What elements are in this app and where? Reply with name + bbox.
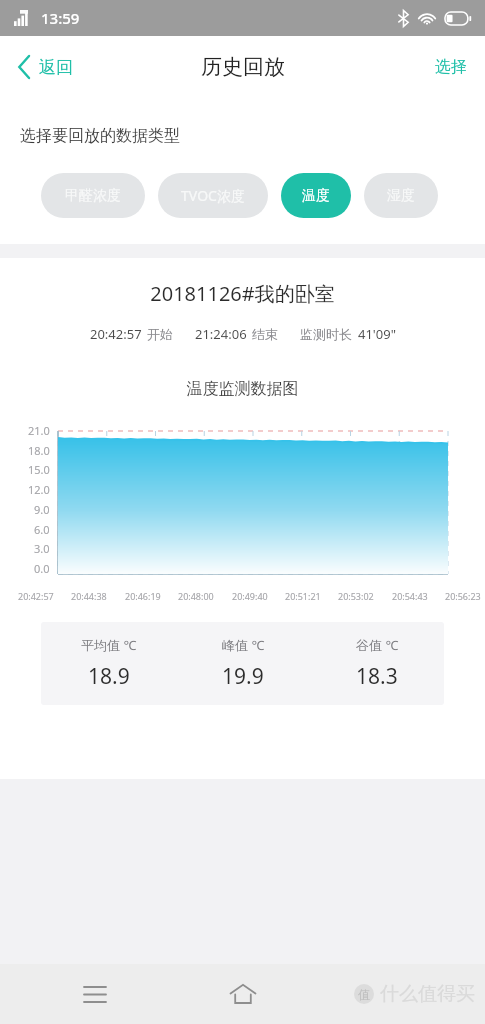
staticText: 18.0 (28, 443, 50, 458)
staticText: 平均值 ℃ (81, 636, 137, 654)
staticText: 12.0 (28, 482, 50, 497)
staticText: 20:44:38 (71, 590, 107, 602)
staticText: 21.0 (28, 423, 50, 438)
staticText: 甲醛浓度 (65, 187, 121, 205)
staticText: 20:54:43 (392, 590, 428, 602)
staticText: 返回 (39, 57, 73, 78)
staticText: 湿度 (387, 187, 415, 205)
staticText: 值 (358, 987, 370, 1002)
button[interactable]: Recent apps (78, 977, 112, 1011)
button[interactable]: 选择 (417, 45, 485, 89)
staticText: 0.0 (34, 561, 50, 576)
staticText: 3.0 (34, 541, 50, 556)
staticText: 21:24:06 (195, 325, 247, 343)
staticText: 9.0 (34, 502, 50, 517)
staticText: 结束 (252, 326, 278, 342)
staticText: 13:59 (41, 8, 80, 28)
staticText: 20:42:57 (18, 590, 54, 602)
staticText: 什么值得买 (380, 982, 475, 1006)
button[interactable]: 甲醛浓度 (41, 173, 145, 218)
staticText: 20:48:00 (178, 590, 214, 602)
button[interactable]: 湿度 (364, 173, 438, 218)
staticText: 20:46:19 (125, 590, 161, 602)
staticText: 19.9 (222, 662, 264, 691)
button[interactable]: Home (223, 974, 263, 1014)
button[interactable]: 温度 (281, 173, 351, 218)
staticText: 18.3 (356, 662, 398, 691)
staticText: 选择 (435, 57, 467, 77)
button[interactable]: 返回 (0, 46, 87, 88)
staticText: 6.0 (34, 522, 50, 537)
staticText: 20:51:21 (285, 590, 321, 602)
button[interactable]: TVOC浓度 (158, 173, 268, 218)
staticText: 选择要回放的数据类型 (20, 126, 180, 146)
staticText: 温度 (302, 187, 330, 205)
staticText: 温度监测数据图 (0, 379, 485, 399)
staticText: 监测时长 (300, 326, 352, 342)
staticText: 历史回放 (201, 54, 285, 80)
staticText: 15.0 (28, 462, 50, 477)
staticText: 谷值 ℃ (356, 636, 399, 654)
staticText: 峰值 ℃ (222, 636, 265, 654)
staticText: 开始 (147, 326, 173, 342)
staticText: 20:56:23 (445, 590, 481, 602)
staticText: 20:53:02 (338, 590, 374, 602)
staticText: 20:49:40 (232, 590, 268, 602)
staticText: 41'09" (358, 325, 396, 343)
staticText: TVOC浓度 (181, 186, 245, 205)
staticText: 20181126#我的卧室 (0, 280, 485, 307)
staticText: 20:42:57 (90, 325, 142, 343)
staticText: 18.9 (88, 662, 130, 691)
